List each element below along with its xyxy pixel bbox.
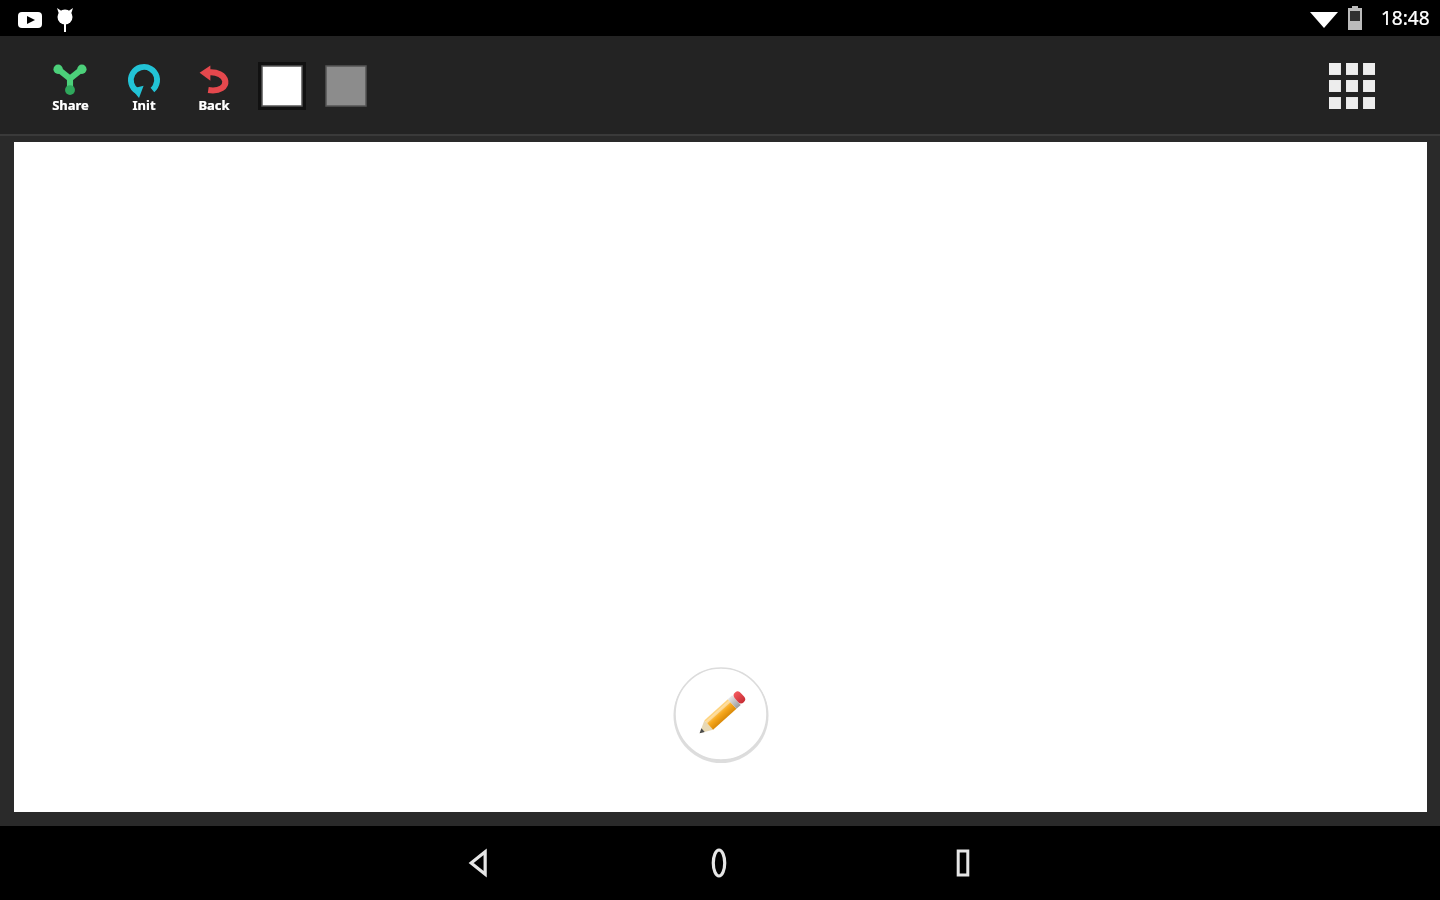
- button[interactable]: Share: [42, 54, 98, 118]
- button[interactable]: Back: [186, 54, 242, 118]
- button[interactable]: Init: [116, 54, 172, 118]
- button[interactable]: Recent apps: [936, 836, 990, 890]
- staticText: Init: [132, 96, 156, 114]
- button[interactable]: White colour: [258, 62, 306, 110]
- button[interactable]: Apps menu: [1326, 60, 1378, 112]
- button[interactable]: Draw with pencil: [673, 666, 769, 762]
- button[interactable]: Back: [452, 836, 506, 890]
- button[interactable]: Draw with pencil: [14, 142, 1427, 812]
- button[interactable]: Grey colour: [322, 62, 370, 110]
- button[interactable]: Home: [692, 836, 746, 890]
- staticText: Share: [52, 96, 89, 114]
- staticText: Back: [198, 96, 230, 114]
- staticText: 18:48: [1381, 5, 1430, 31]
